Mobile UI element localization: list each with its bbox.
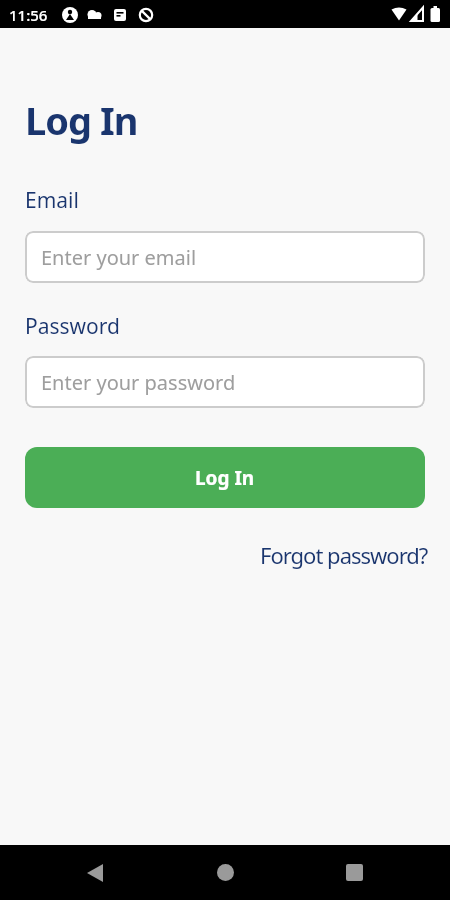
staticText: Log In — [25, 94, 138, 146]
button[interactable]: Log In — [25, 447, 425, 508]
staticText: Enter your email — [41, 244, 197, 271]
button[interactable] — [150, 845, 300, 900]
button[interactable] — [300, 845, 450, 900]
button[interactable]: Forgot password? — [260, 540, 428, 570]
staticText: Password — [25, 312, 120, 341]
staticText: Email — [25, 186, 79, 215]
staticText: Enter your password — [41, 369, 236, 396]
staticText: 11:56 — [9, 5, 48, 25]
button[interactable] — [0, 845, 150, 900]
button[interactable]: Enter your password — [25, 356, 425, 408]
staticText: Log In — [195, 465, 255, 491]
button[interactable]: Enter your email — [25, 231, 425, 283]
